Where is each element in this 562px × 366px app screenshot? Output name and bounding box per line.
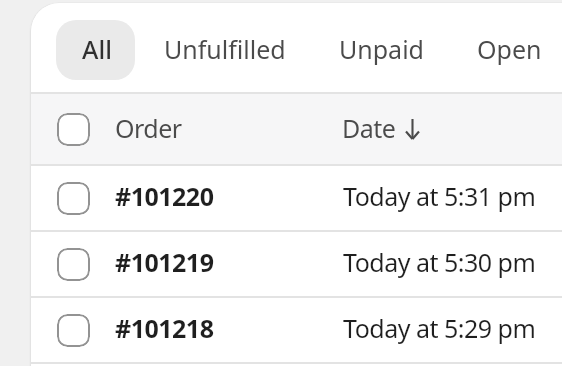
staticText: All [82,32,112,66]
button[interactable]: Select [31,298,562,362]
button[interactable]: Select [31,166,562,230]
button[interactable]: Open [453,20,562,80]
button[interactable]: Select [57,248,90,281]
staticText: Date [342,111,396,145]
staticText: #101220 [115,179,214,213]
staticText: Today at 5:29 pm [343,311,536,345]
staticText: Unpaid [339,32,424,66]
staticText: #101218 [115,311,214,345]
button[interactable]: Select [57,314,90,347]
staticText: Order [115,111,182,145]
staticText: Today at 5:31 pm [343,179,536,213]
button[interactable]: Unpaid [315,20,448,80]
button[interactable]: All [56,20,135,80]
button[interactable]: Unfulfilled [140,20,310,80]
button[interactable]: Select [31,232,562,296]
staticText: Today at 5:30 pm [343,245,536,279]
staticText: Open [477,32,542,66]
staticText: #101219 [115,245,214,279]
button[interactable]: Select [57,113,90,146]
button[interactable]: Select [57,182,90,215]
staticText: Unfulfilled [164,32,286,66]
